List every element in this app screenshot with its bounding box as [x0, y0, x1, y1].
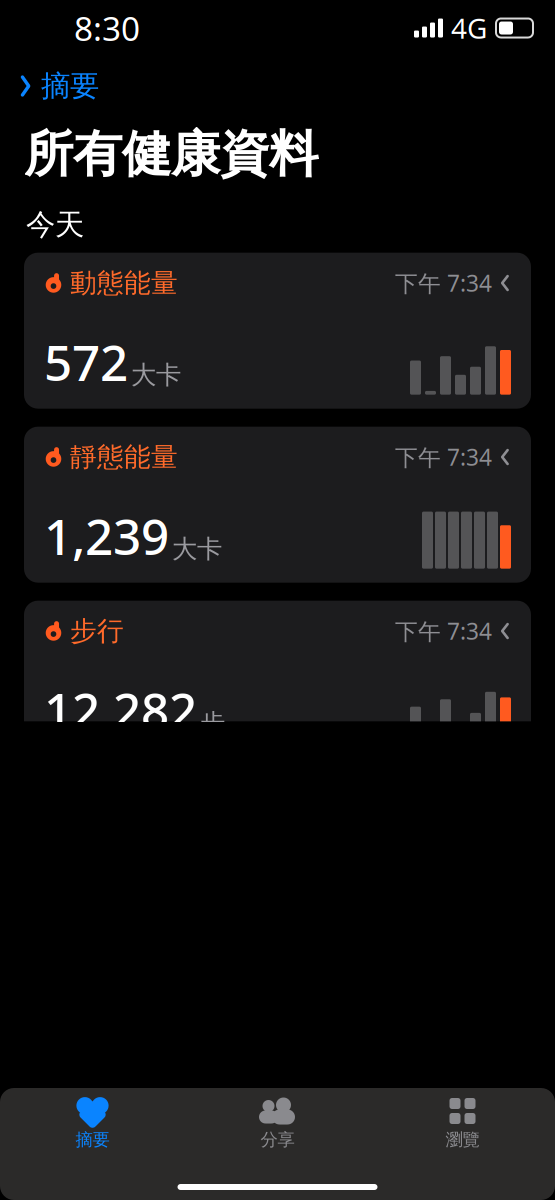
- staticText: 21: [44, 1025, 100, 1091]
- staticText: 摘要: [75, 1129, 109, 1150]
- staticText: 所有健康資料: [24, 124, 318, 185]
- staticText: 大卡: [131, 359, 181, 391]
- staticText: 分享: [260, 1129, 294, 1150]
- button[interactable]: 摘要: [0, 62, 99, 110]
- button[interactable]: 摘要: [0, 1088, 185, 1150]
- staticText: 摘要: [41, 68, 99, 104]
- staticText: 今天: [26, 207, 84, 243]
- staticText: 4G: [451, 9, 487, 47]
- staticText: 動態能量: [70, 267, 178, 299]
- button[interactable]: 分享: [185, 1088, 370, 1150]
- staticText: 12,282: [44, 677, 197, 743]
- staticText: 靜態能量: [70, 441, 178, 473]
- staticText: 1,239: [44, 503, 169, 569]
- button[interactable]: 動態能量: [24, 253, 531, 409]
- staticText: 步行: [70, 615, 124, 647]
- staticText: 下午 7:34: [395, 268, 492, 298]
- staticText: 8:30: [74, 6, 140, 50]
- staticText: 瀏覽: [445, 1129, 479, 1150]
- button[interactable]: 靜態能量: [24, 427, 531, 583]
- button[interactable]: 爬樓梯段數: [24, 949, 531, 1105]
- button[interactable]: 瀏覽: [370, 1088, 555, 1150]
- staticText: 下午 7:34: [395, 616, 492, 646]
- staticText: 下午 7:34: [395, 442, 492, 472]
- staticText: 步: [200, 707, 225, 739]
- staticText: 572: [44, 329, 128, 395]
- staticText: 大卡: [172, 533, 222, 565]
- button[interactable]: 步行: [24, 601, 531, 757]
